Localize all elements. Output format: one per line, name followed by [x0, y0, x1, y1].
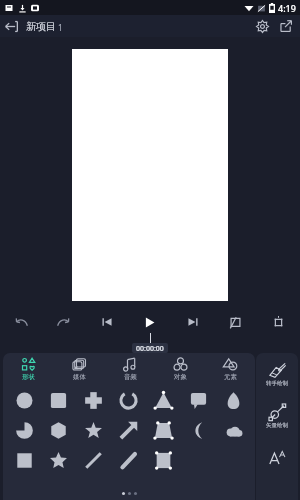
button[interactable]: Shape 7	[7, 415, 41, 445]
button[interactable]: Skip to start	[85, 311, 128, 333]
button[interactable]: Shape 6	[216, 385, 251, 415]
button[interactable]: Shape 3	[111, 385, 146, 415]
button[interactable]: 矢量绘制	[256, 395, 298, 437]
button[interactable]: Shape 18	[146, 445, 181, 475]
button[interactable]: Shape 9	[76, 415, 111, 445]
button[interactable]: Shape 2	[76, 385, 111, 415]
button[interactable]: Play	[128, 311, 171, 333]
button[interactable]: Redo	[42, 311, 85, 333]
button[interactable]: Shape 11	[146, 415, 181, 445]
button[interactable]: Shape 15	[41, 445, 76, 475]
staticText: 1	[58, 22, 63, 33]
staticText: 音频	[124, 373, 137, 381]
button[interactable]: Shape 14	[7, 445, 41, 475]
button[interactable]: Shape 13	[216, 415, 251, 445]
button[interactable]: Fit	[257, 311, 300, 333]
button[interactable]: Shape 4	[146, 385, 181, 415]
button[interactable]: 元素	[205, 353, 255, 385]
staticText: 4:19	[278, 2, 296, 14]
button[interactable]: 对象	[155, 353, 205, 385]
button[interactable]: Shape 0	[7, 385, 41, 415]
staticText: 转手绘制	[266, 380, 288, 387]
staticText: 新项目	[26, 20, 56, 33]
button[interactable]: 转手绘制	[256, 353, 298, 395]
staticText: 形状	[22, 373, 35, 381]
button[interactable]: Undo	[0, 311, 42, 333]
staticText: 元素	[224, 373, 237, 381]
button[interactable]: Skip to end	[171, 311, 214, 333]
button[interactable]: Back	[0, 15, 22, 37]
button[interactable]: Loop	[214, 311, 257, 333]
staticText: 媒体	[73, 373, 86, 381]
button[interactable]: 音频	[105, 353, 155, 385]
button[interactable]: 媒体	[54, 353, 105, 385]
button[interactable]	[256, 437, 298, 479]
button[interactable]: Shape 10	[111, 415, 146, 445]
button[interactable]: Shape 5	[181, 385, 216, 415]
button[interactable]: Shape 8	[41, 415, 76, 445]
button[interactable]: Shape 12	[181, 415, 216, 445]
button[interactable]: Shape 1	[41, 385, 76, 415]
button[interactable]: Shape 17	[111, 445, 146, 475]
staticText: 矢量绘制	[266, 422, 288, 429]
staticText: 00:00:00	[136, 344, 164, 352]
button[interactable]: Export	[276, 16, 296, 36]
button[interactable]: Settings	[252, 16, 272, 36]
button[interactable]: 形状	[3, 353, 54, 385]
staticText: 对象	[174, 373, 187, 381]
button[interactable]: Shape 16	[76, 445, 111, 475]
